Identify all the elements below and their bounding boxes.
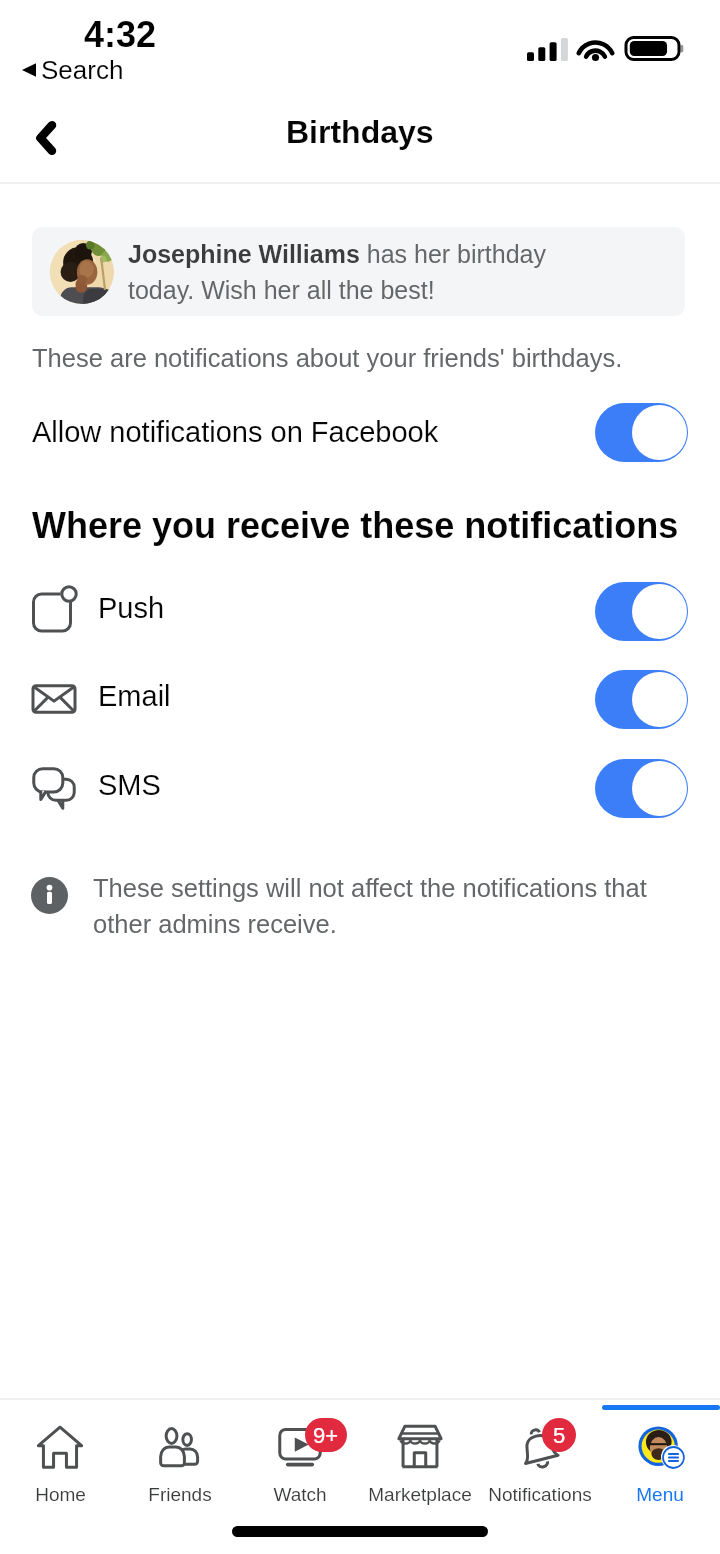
- staticText: Marketplace: [368, 1484, 472, 1505]
- button[interactable]: Friends: [120, 1424, 240, 1505]
- button[interactable]: Push: [0, 568, 720, 654]
- staticText: Menu: [636, 1484, 684, 1505]
- button[interactable]: Email: [0, 656, 720, 742]
- button[interactable]: Turn off Push: [595, 582, 688, 641]
- button[interactable]: Allow notifications on Facebook: [0, 396, 720, 468]
- button[interactable]: SMS: [0, 745, 720, 831]
- button[interactable]: 5: [480, 1424, 600, 1505]
- staticText: 5: [553, 1423, 566, 1448]
- staticText: Birthdays: [286, 114, 434, 150]
- button[interactable]: Turn off notifications on Facebook: [595, 403, 688, 462]
- staticText: Search: [41, 55, 124, 84]
- staticText: Watch: [273, 1484, 327, 1505]
- button[interactable]: 9+: [240, 1424, 360, 1505]
- staticText: Email: [98, 680, 171, 712]
- staticText: These are notifications about your frien…: [32, 344, 623, 372]
- button[interactable]: Josephine Williams has her birthday toda…: [32, 227, 685, 316]
- staticText: SMS: [98, 769, 161, 801]
- staticText: Friends: [148, 1484, 212, 1505]
- button[interactable]: Marketplace: [360, 1424, 480, 1505]
- staticText: Notifications: [488, 1484, 592, 1505]
- staticText: Allow notifications on Facebook: [32, 416, 439, 448]
- button[interactable]: Turn off SMS: [595, 759, 688, 818]
- staticText: These settings will not affect the notif…: [93, 874, 647, 938]
- button[interactable]: Menu: [600, 1424, 720, 1505]
- staticText: 9+: [313, 1423, 339, 1448]
- button[interactable]: Turn off Email: [595, 670, 688, 729]
- staticText: Home: [35, 1484, 86, 1505]
- staticText: 4:32: [84, 14, 157, 54]
- button[interactable]: Home: [0, 1424, 120, 1505]
- staticText: Where you receive these notifications: [32, 505, 679, 545]
- staticText: Josephine Williams has her birthday toda…: [128, 240, 547, 304]
- button[interactable]: Back: [13, 105, 79, 171]
- staticText: Push: [98, 592, 165, 624]
